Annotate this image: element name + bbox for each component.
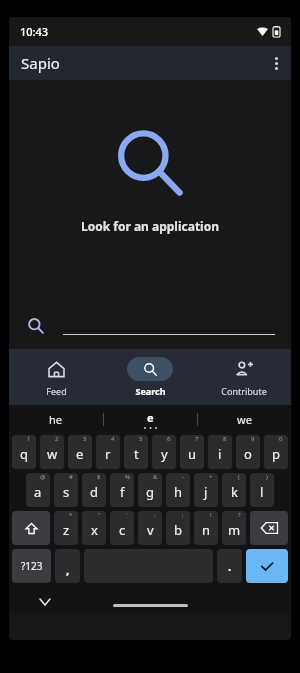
- button[interactable]: -: [166, 473, 190, 507]
- staticText: 5: [139, 435, 143, 443]
- staticText: ): [266, 473, 268, 481]
- button[interactable]: 7: [180, 435, 204, 469]
- staticText: ?123: [21, 559, 43, 573]
- button[interactable]: ;: [166, 511, 190, 545]
- staticText: (: [238, 473, 240, 481]
- staticText: 2: [55, 435, 59, 443]
- button[interactable]: (: [222, 473, 246, 507]
- staticText: 7: [195, 435, 199, 443]
- staticText: Sapio: [21, 53, 60, 73]
- button[interactable]: e: [104, 405, 197, 433]
- staticText: d: [90, 483, 98, 501]
- staticText: w: [47, 445, 58, 463]
- staticText: q: [20, 445, 28, 463]
- button[interactable]: Comma: [55, 549, 80, 583]
- staticText: c: [119, 521, 126, 539]
- button[interactable]: Hide keyboard: [34, 591, 56, 613]
- staticText: Contribute: [221, 385, 267, 397]
- staticText: Search: [135, 385, 166, 397]
- button[interactable]: Shift: [12, 511, 50, 545]
- staticText: Feed: [46, 385, 67, 397]
- staticText: @: [40, 473, 46, 481]
- staticText: o: [244, 445, 252, 463]
- staticText: ": [98, 511, 101, 519]
- button[interactable]: Period: [217, 549, 242, 583]
- button[interactable]: !: [194, 511, 218, 545]
- staticText: :: [154, 511, 156, 519]
- staticText: i: [218, 445, 222, 463]
- staticText: m: [228, 521, 241, 539]
- staticText: n: [202, 521, 211, 539]
- button[interactable]: 5: [124, 435, 148, 469]
- staticText: -: [182, 473, 184, 481]
- button[interactable]: Contribute: [197, 349, 291, 405]
- staticText: Look for an application: [81, 218, 220, 234]
- button[interactable]: ': [110, 511, 134, 545]
- button[interactable]: we: [198, 405, 291, 433]
- staticText: f: [120, 483, 125, 501]
- staticText: r: [105, 445, 111, 463]
- staticText: l: [260, 483, 264, 501]
- staticText: 6: [167, 435, 171, 443]
- button[interactable]: Search: [103, 349, 197, 405]
- button[interactable]: Enter: [246, 549, 288, 583]
- button[interactable]: +: [194, 473, 218, 507]
- staticText: x: [91, 521, 98, 539]
- button[interactable]: 3: [68, 435, 92, 469]
- staticText: ?: [238, 511, 241, 519]
- button[interactable]: $: [82, 473, 106, 507]
- staticText: e: [147, 410, 154, 425]
- button[interactable]: 6: [152, 435, 176, 469]
- staticText: ;: [182, 511, 184, 519]
- button[interactable]: *: [54, 511, 78, 545]
- staticText: u: [188, 445, 197, 463]
- staticText: +: [209, 473, 213, 481]
- button[interactable]: #: [54, 473, 78, 507]
- button[interactable]: &: [138, 473, 162, 507]
- staticText: t: [134, 445, 139, 463]
- button[interactable]: Backspace: [250, 511, 288, 545]
- staticText: p: [272, 445, 280, 463]
- button[interactable]: @: [26, 473, 50, 507]
- button[interactable]: 2: [40, 435, 64, 469]
- button[interactable]: 1: [12, 435, 36, 469]
- button[interactable]: 0: [264, 435, 288, 469]
- button[interactable]: %: [110, 473, 134, 507]
- button[interactable]: ): [250, 473, 274, 507]
- staticText: !: [210, 511, 212, 519]
- staticText: k: [231, 483, 238, 501]
- staticText: ': [126, 511, 128, 519]
- staticText: 8: [223, 435, 227, 443]
- staticText: 1: [27, 435, 31, 443]
- staticText: g: [146, 483, 154, 501]
- staticText: b: [174, 521, 182, 539]
- button[interactable]: ?: [222, 511, 246, 545]
- staticText: y: [161, 445, 168, 463]
- button[interactable]: 9: [236, 435, 260, 469]
- staticText: 4: [111, 435, 115, 443]
- staticText: z: [63, 521, 70, 539]
- staticText: #: [69, 473, 73, 481]
- staticText: $: [97, 473, 101, 481]
- button[interactable]: [27, 317, 275, 335]
- staticText: 0: [279, 435, 283, 443]
- staticText: h: [174, 483, 183, 501]
- button[interactable]: 4: [96, 435, 120, 469]
- button[interactable]: Feed: [9, 349, 103, 405]
- staticText: 3: [83, 435, 87, 443]
- button[interactable]: :: [138, 511, 162, 545]
- staticText: j: [204, 483, 208, 501]
- button[interactable]: 8: [208, 435, 232, 469]
- button[interactable]: he: [9, 405, 103, 433]
- button[interactable]: ": [82, 511, 106, 545]
- staticText: he: [49, 412, 63, 427]
- staticText: e: [76, 445, 84, 463]
- button[interactable]: Symbols: [12, 549, 51, 583]
- staticText: %: [125, 473, 130, 481]
- staticText: v: [147, 521, 154, 539]
- staticText: s: [63, 483, 70, 501]
- staticText: 9: [251, 435, 255, 443]
- button[interactable]: More options: [261, 48, 291, 78]
- staticText: &: [153, 473, 158, 481]
